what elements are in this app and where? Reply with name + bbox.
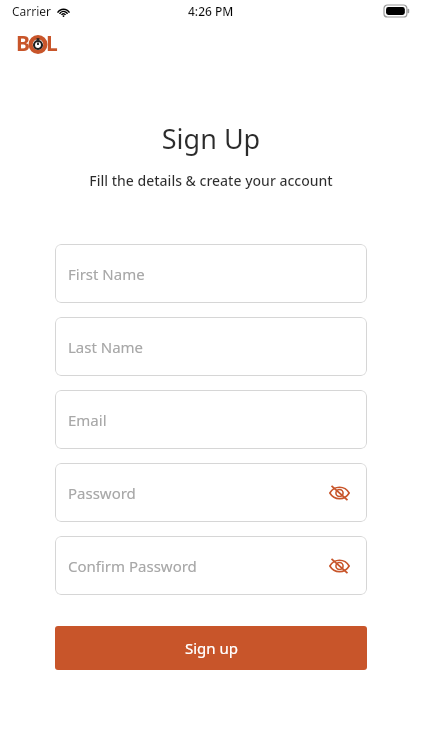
button[interactable]: Password <box>55 463 367 522</box>
staticText: Confirm Password <box>68 556 197 576</box>
button[interactable]: Confirm Password <box>55 536 367 595</box>
staticText: Sign up <box>185 638 238 658</box>
button[interactable]: Email <box>55 390 367 449</box>
staticText: Email <box>68 410 107 430</box>
staticText: Carrier <box>12 3 52 19</box>
button[interactable]: Show password <box>325 552 353 580</box>
staticText: 4:26 PM <box>188 3 234 19</box>
staticText: Sign Up <box>0 120 422 157</box>
button[interactable]: Last Name <box>55 317 367 376</box>
button[interactable]: Sign up <box>55 626 367 670</box>
staticText: B <box>16 29 30 58</box>
staticText: First Name <box>68 264 145 284</box>
staticText: Fill the details & create your account <box>0 171 422 190</box>
staticText: Password <box>68 483 136 503</box>
staticText: Last Name <box>68 337 144 357</box>
button[interactable]: Show password <box>325 479 353 507</box>
button[interactable]: First Name <box>55 244 367 303</box>
staticText: L <box>46 29 58 58</box>
